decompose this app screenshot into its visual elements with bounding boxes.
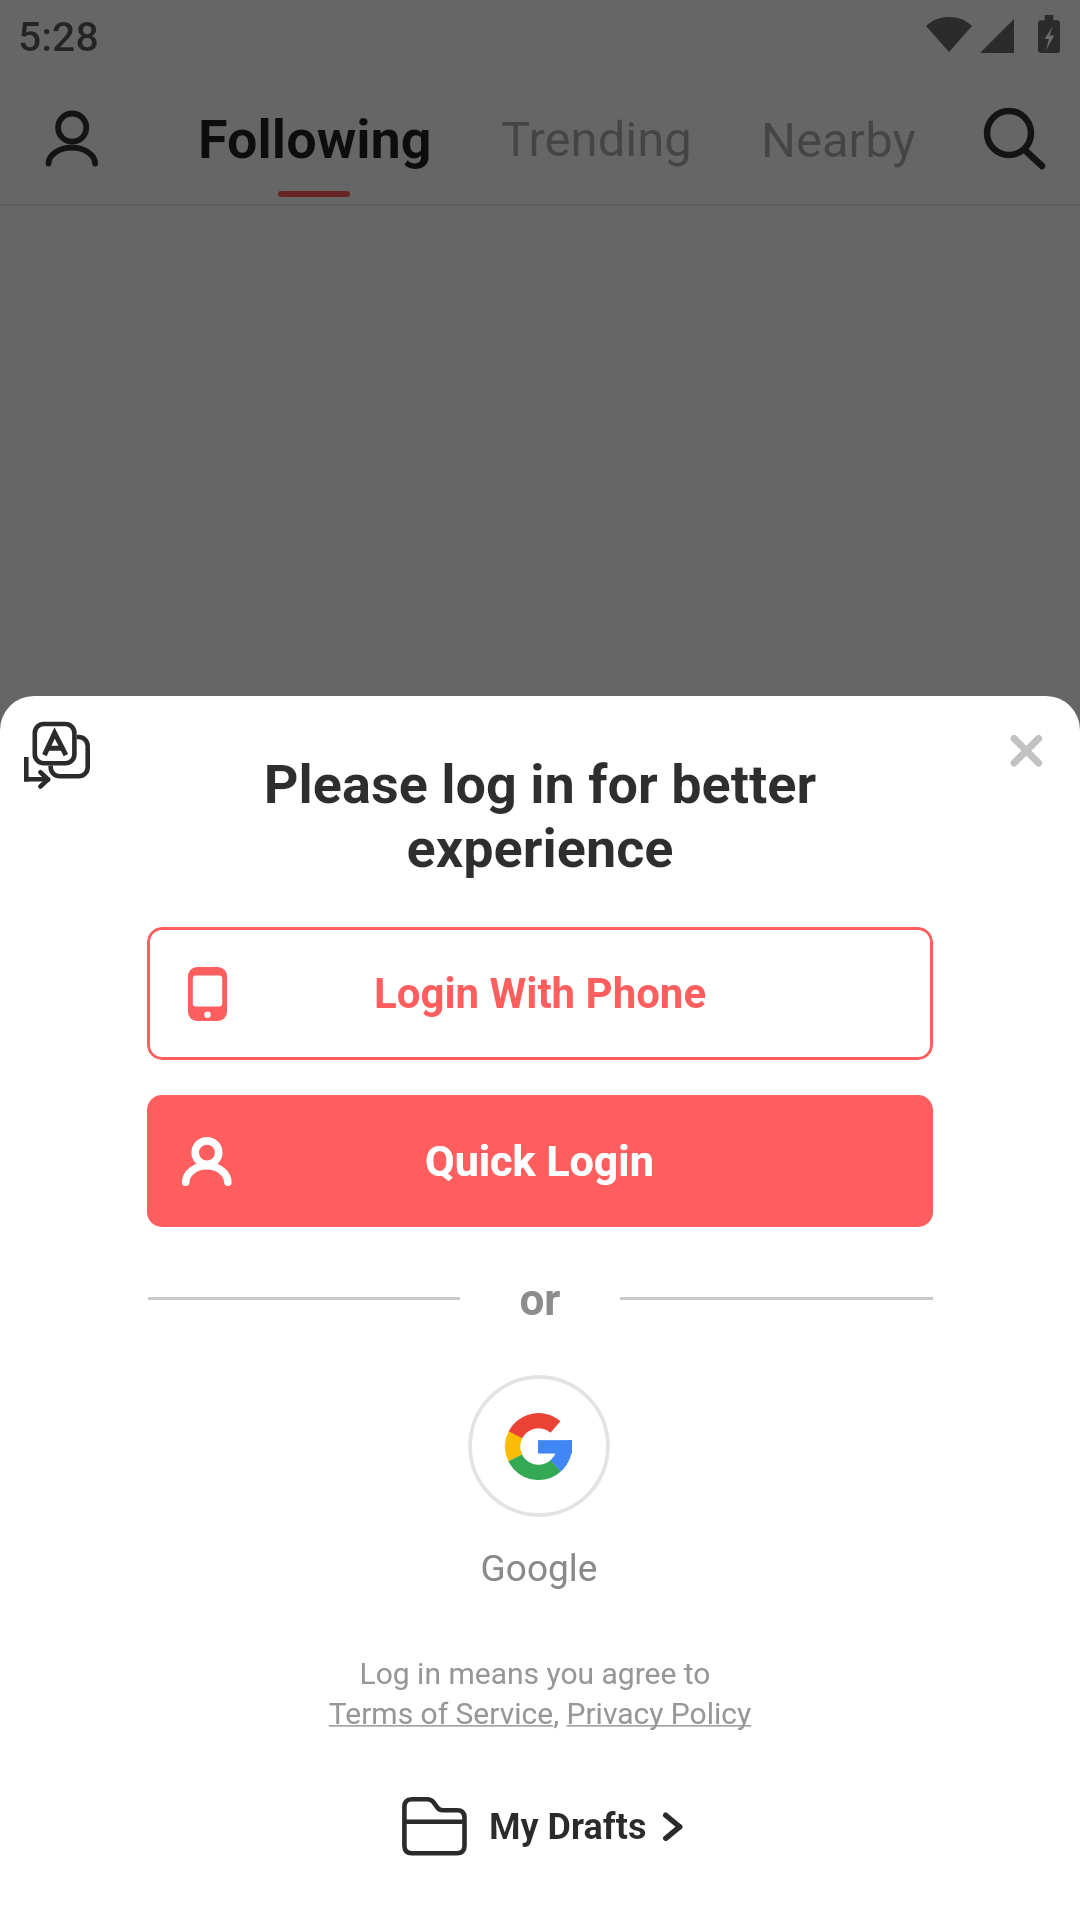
button[interactable]: Nearby: [741, 98, 936, 183]
staticText: Please log in for better experience: [180, 753, 900, 880]
button[interactable]: My Drafts: [386, 1785, 701, 1869]
button[interactable]: Trending: [481, 97, 712, 182]
staticText: 5:28: [18, 13, 99, 61]
staticText: Nearby: [761, 112, 916, 169]
button[interactable]: Quick Login: [147, 1095, 933, 1227]
button[interactable]: Sign in with Google: [468, 1375, 610, 1517]
button[interactable]: Following: [178, 94, 452, 185]
button[interactable]: Terms of Service, Privacy Policy: [240, 1696, 840, 1731]
staticText: Login With Phone: [374, 969, 707, 1018]
button[interactable]: Translate: [6, 702, 104, 796]
button[interactable]: Login With Phone: [147, 927, 933, 1060]
button[interactable]: Close: [985, 709, 1069, 793]
staticText: or: [441, 1274, 639, 1326]
staticText: Quick Login: [425, 1136, 654, 1186]
button[interactable]: Search: [959, 83, 1059, 183]
staticText: My Drafts: [489, 1806, 647, 1848]
staticText: Log in means you agree to: [235, 1656, 835, 1691]
staticText: Trending: [501, 111, 692, 168]
staticText: Following: [198, 108, 432, 171]
staticText: Google: [339, 1547, 739, 1590]
button[interactable]: Profile: [22, 82, 122, 180]
